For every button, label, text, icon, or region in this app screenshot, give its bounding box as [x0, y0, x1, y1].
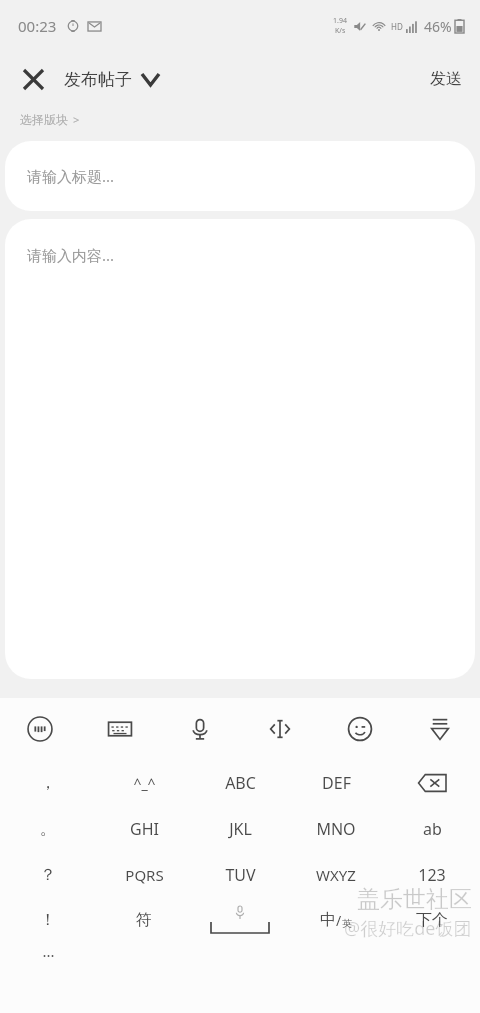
staticText: JKL — [229, 818, 252, 840]
button[interactable]: ··· — [0, 942, 96, 967]
button[interactable]: JKL — [192, 806, 288, 852]
button[interactable]: Backspace — [384, 760, 480, 806]
staticText: ABC — [225, 772, 256, 794]
staticText: 。 — [40, 819, 56, 839]
staticText: 选择版块 — [20, 112, 68, 127]
staticText: PQRS — [125, 865, 164, 885]
button[interactable]: ^_^ — [96, 760, 192, 806]
other: Backspace — [418, 773, 446, 793]
button[interactable]: Close — [12, 58, 54, 100]
staticText: ！ — [40, 910, 56, 930]
button[interactable]: Cursor — [240, 698, 320, 760]
button[interactable]: IME — [0, 698, 80, 760]
staticText: / — [336, 911, 342, 930]
staticText: TUV — [225, 864, 256, 886]
staticText: ^_^ — [133, 774, 156, 793]
button[interactable]: Voice input — [160, 698, 240, 760]
staticText: 123 — [418, 864, 446, 886]
staticText: ， — [40, 773, 56, 793]
staticText: 发布帖子 — [64, 69, 132, 90]
staticText: 发送 — [430, 69, 462, 89]
button[interactable]: ！ — [0, 897, 96, 942]
staticText: ··· — [42, 945, 55, 965]
button[interactable]: 中 — [288, 897, 384, 942]
staticText: ab — [423, 818, 442, 840]
button[interactable]: ？ — [0, 852, 96, 897]
button[interactable]: Space — [192, 897, 288, 942]
button[interactable]: 符 — [96, 897, 192, 942]
button[interactable]: 选择版块 — [0, 106, 480, 133]
staticText: HD — [391, 21, 403, 32]
staticText: 盖乐世社区 — [357, 885, 472, 914]
staticText: 00:23 — [18, 16, 57, 36]
button[interactable]: ABC — [192, 760, 288, 806]
button[interactable]: TUV — [192, 852, 288, 897]
staticText: @很好吃de饭团 — [344, 916, 472, 941]
staticText: WXYZ — [316, 865, 356, 885]
button[interactable]: PQRS — [96, 852, 192, 897]
button[interactable]: WXYZ — [288, 852, 384, 897]
staticText: MNO — [316, 818, 356, 840]
staticText: 符 — [136, 910, 152, 930]
staticText: K/s — [335, 26, 346, 36]
other: Space — [211, 922, 269, 933]
button[interactable]: DEF — [288, 760, 384, 806]
button[interactable]: GHI — [96, 806, 192, 852]
staticText: ？ — [40, 865, 56, 885]
staticText: DEF — [322, 772, 351, 794]
staticText: GHI — [130, 818, 159, 840]
button[interactable]: 发布帖子 — [60, 61, 163, 98]
staticText: 中 — [320, 910, 336, 930]
staticText: 下个 — [416, 910, 448, 930]
staticText: > — [73, 112, 80, 127]
button[interactable]: ab — [384, 806, 480, 852]
button[interactable]: 请输入标题... — [5, 141, 475, 211]
button[interactable]: Emoji — [320, 698, 400, 760]
button[interactable]: 请输入内容... — [5, 219, 475, 679]
button[interactable]: 。 — [0, 806, 96, 852]
button[interactable]: 下个 — [384, 897, 480, 942]
button[interactable]: MNO — [288, 806, 384, 852]
button[interactable]: Keyboard — [80, 698, 160, 760]
button[interactable]: 123 — [384, 852, 480, 897]
staticText: 英 — [342, 917, 352, 930]
staticText: 46% — [424, 17, 452, 36]
button[interactable]: 发送 — [412, 59, 480, 99]
button[interactable]: ， — [0, 760, 96, 806]
staticText: 1.94 — [333, 16, 347, 26]
staticText: 请输入内容... — [27, 245, 115, 265]
staticText: 请输入标题... — [27, 166, 115, 186]
button[interactable]: Hide keyboard — [400, 698, 480, 760]
